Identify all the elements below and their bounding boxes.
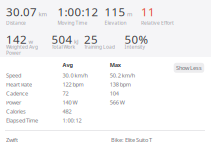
staticText: Bike: Elite Suito T	[111, 136, 152, 144]
staticText: 50%	[124, 31, 148, 47]
staticText: 504	[52, 31, 73, 47]
staticText: Show Less	[176, 64, 202, 72]
staticText: 1:00:12	[57, 4, 98, 20]
staticText: Moving Time	[57, 20, 87, 26]
staticText: 138 bpm	[110, 81, 131, 88]
staticText: 72	[62, 90, 68, 97]
staticText: Zwift	[6, 136, 18, 144]
staticText: 142	[6, 31, 27, 47]
staticText: Max	[110, 61, 121, 69]
staticText: Total Work	[52, 44, 76, 50]
staticText: 30.07	[6, 4, 37, 20]
staticText: m	[127, 10, 132, 18]
staticText: Distance	[6, 20, 26, 26]
staticText: Weighted Avg Power	[6, 44, 38, 56]
staticText: 482	[62, 108, 71, 115]
staticText: 104	[110, 90, 119, 97]
staticText: 30.0 km/h	[62, 72, 87, 79]
staticText: kJ	[74, 37, 79, 45]
staticText: 50.2 km/h	[110, 72, 135, 79]
staticText: Elapsed Time	[6, 117, 38, 124]
staticText: w	[28, 37, 33, 45]
staticText: Intensity	[124, 44, 145, 50]
staticText: Avg	[62, 61, 73, 69]
staticText: Relative Effort	[141, 20, 174, 26]
staticText: Power	[6, 99, 21, 106]
staticText: Heart Rate	[6, 81, 32, 88]
staticText: 25	[84, 31, 98, 47]
staticText: km	[38, 10, 46, 18]
staticText: Cadence	[6, 90, 28, 97]
staticText: 566 W	[110, 99, 125, 106]
staticText: 1:00:12	[62, 117, 81, 124]
staticText: 122 bpm	[62, 81, 83, 88]
staticText: 140 W	[62, 99, 77, 106]
staticText: 115	[104, 4, 125, 20]
staticText: Elevation	[104, 20, 126, 26]
button[interactable]: Show Less	[174, 63, 204, 73]
staticText: Training Load	[84, 44, 115, 50]
staticText: Calories	[6, 108, 26, 115]
staticText: Speed	[6, 72, 21, 79]
staticText: 11	[141, 4, 155, 20]
